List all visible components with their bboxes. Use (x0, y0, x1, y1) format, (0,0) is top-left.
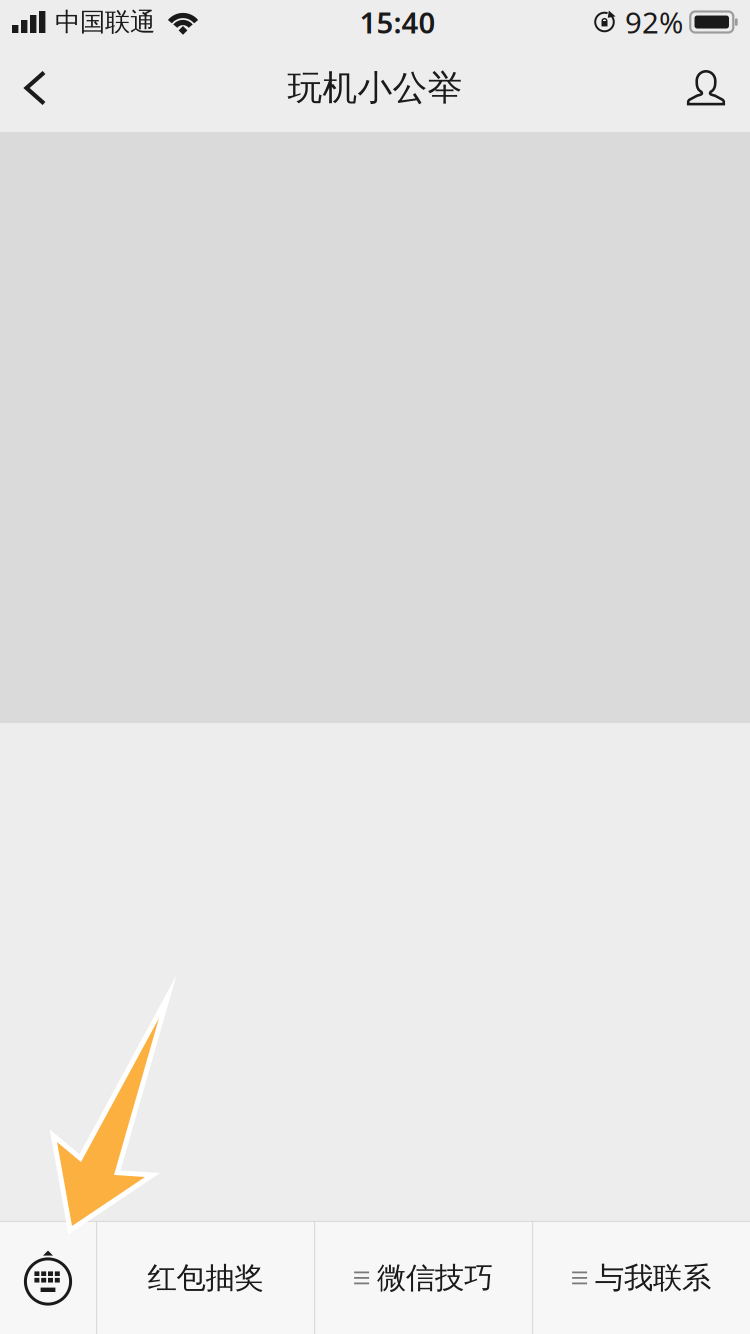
staticText: 与我联系 (595, 1260, 711, 1296)
staticText: 长按识别下方二维码添加小编微信好友 (156, 706, 637, 798)
staticText: 中国联通 (55, 6, 155, 37)
staticText: 红包抽奖 (148, 1260, 264, 1296)
staticText: 92% (625, 2, 683, 41)
button[interactable]: 微信技巧 (315, 1222, 532, 1334)
button[interactable]: 红包抽奖 (97, 1222, 314, 1334)
button[interactable]: 切换到键盘 (0, 1222, 96, 1334)
staticText: 15:40 (359, 2, 435, 41)
button[interactable]: 返回 (0, 44, 70, 132)
staticText: 微信技巧 (377, 1260, 493, 1296)
button[interactable]: 公众号资料 (662, 44, 750, 132)
staticText: 玩机小公举 (287, 67, 462, 109)
button[interactable]: 与我联系 (533, 1222, 750, 1334)
staticText: 互联网时代的微信使用技巧 每天学一点 (156, 92, 606, 203)
